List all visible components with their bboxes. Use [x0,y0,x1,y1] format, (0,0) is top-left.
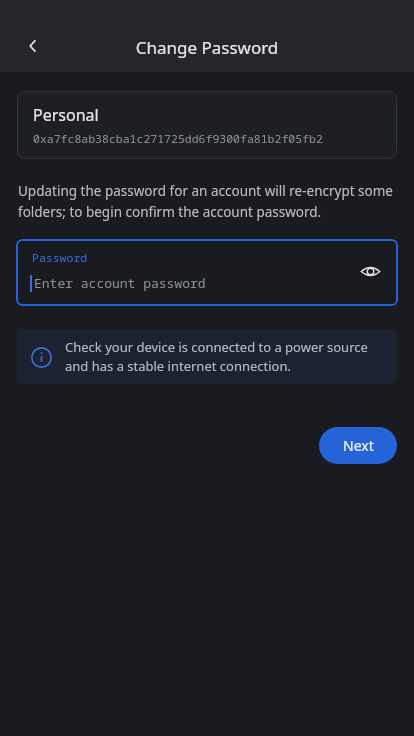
staticText: Check your device is connected to a powe… [65,338,381,375]
button[interactable]: Next [319,427,397,464]
staticText: 0xa7fc8ab38cba1c271725dd6f9300fa81b2f05f… [33,131,323,147]
button[interactable]: Password [16,239,398,306]
button[interactable]: Show password [355,256,385,286]
staticText: Password [32,250,88,266]
staticText: Next [343,436,374,455]
button[interactable]: Personal [17,91,397,159]
staticText: Change Password [0,36,414,59]
staticText: Updating the password for an account wil… [18,182,396,221]
button[interactable]: Check your device is connected to a powe… [17,329,397,384]
button[interactable]: Back [13,26,53,66]
staticText: Enter account password [34,274,206,292]
staticText: Personal [33,104,99,126]
